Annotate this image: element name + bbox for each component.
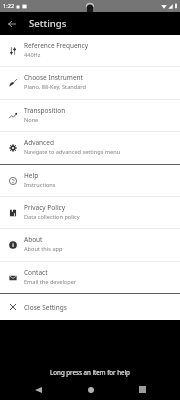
staticText: About: [24, 235, 43, 244]
staticText: Transposition: [24, 106, 66, 115]
staticText: Long press an item for help: [0, 368, 180, 376]
staticText: 1:22: [3, 2, 15, 10]
button[interactable]: Back: [28, 379, 49, 400]
button[interactable]: Contact: [0, 262, 180, 293]
staticText: Choose Instrument: [24, 73, 83, 82]
staticText: Instructions: [24, 181, 56, 189]
button[interactable]: Transposition: [0, 100, 180, 131]
staticText: Piano, 88-Key, Standard: [24, 83, 86, 91]
staticText: Settings: [29, 17, 67, 30]
staticText: Contact: [24, 268, 48, 277]
button[interactable]: Advanced: [0, 132, 180, 164]
button[interactable]: Back: [5, 17, 18, 30]
staticText: Reference Frequency: [24, 41, 89, 50]
staticText: 440Hz: [24, 51, 41, 59]
button[interactable]: Recents: [132, 379, 153, 400]
button[interactable]: Help: [0, 165, 180, 196]
staticText: Privacy Policy: [24, 203, 66, 212]
button[interactable]: Close Settings: [0, 294, 180, 320]
staticText: Navigate to advanced settings menu: [24, 148, 121, 156]
button[interactable]: Reference Frequency: [0, 35, 180, 66]
staticText: Advanced: [24, 138, 54, 147]
staticText: Email the developer: [24, 278, 77, 286]
staticText: None: [24, 116, 39, 124]
button[interactable]: Home: [80, 379, 101, 400]
staticText: Close Settings: [24, 303, 67, 312]
staticText: Data collection policy: [24, 213, 80, 221]
button[interactable]: Choose Instrument: [0, 67, 180, 99]
button[interactable]: Privacy Policy: [0, 197, 180, 228]
staticText: About this app: [24, 245, 63, 253]
button[interactable]: About: [0, 229, 180, 261]
staticText: Help: [24, 171, 39, 180]
